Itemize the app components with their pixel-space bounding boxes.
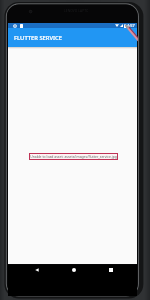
button[interactable]: FLUTTER SERVICE bbox=[8, 28, 137, 47]
staticText: LENOVO LAPTOP bbox=[64, 9, 88, 13]
staticText: 4:57 bbox=[127, 23, 135, 28]
button[interactable]: Unable to load asset: assets/images/flut… bbox=[29, 153, 118, 160]
button[interactable]: Home bbox=[68, 264, 80, 276]
staticText: FLUTTER SERVICE bbox=[14, 34, 63, 42]
button[interactable]: Back bbox=[31, 264, 43, 276]
button[interactable]: Recent apps bbox=[105, 264, 117, 276]
staticText: Unable to load asset: assets/images/flut… bbox=[30, 154, 117, 159]
